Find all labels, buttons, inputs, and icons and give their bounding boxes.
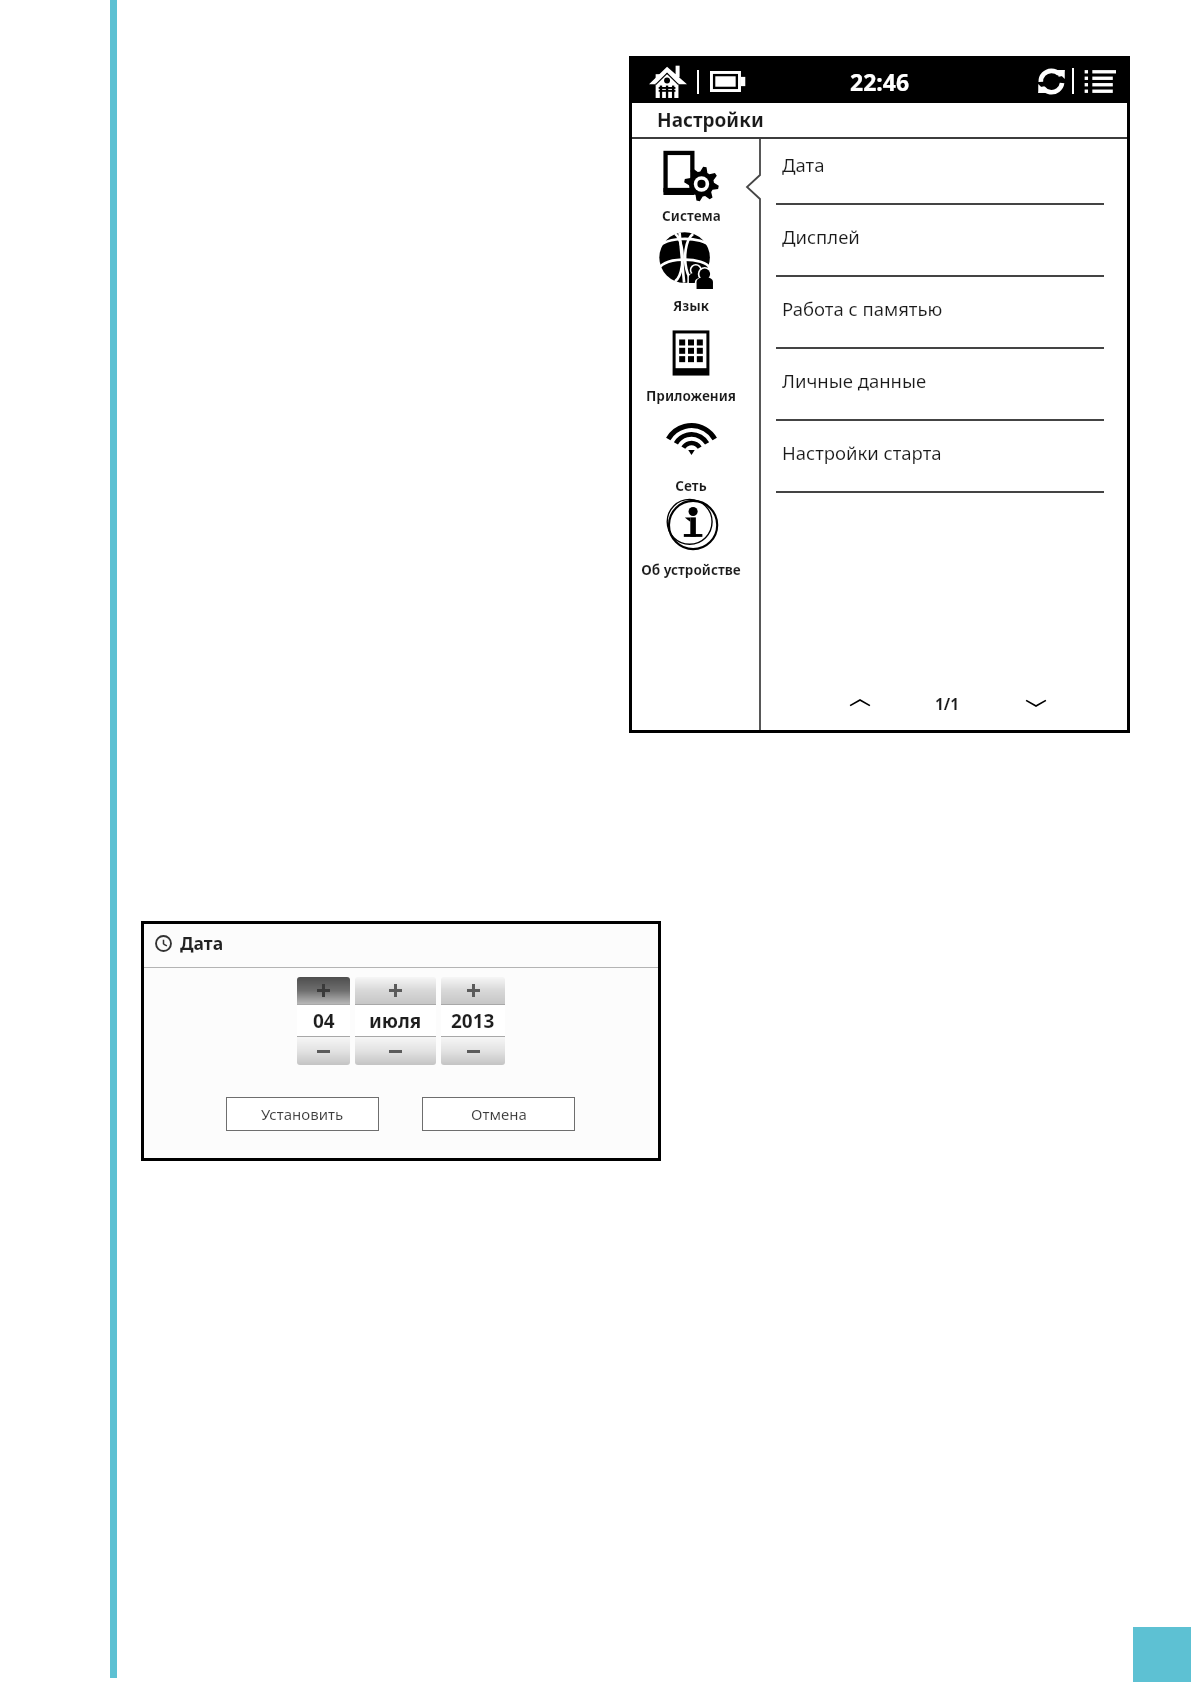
- staticText: июля: [369, 1008, 422, 1034]
- staticText: Настройки: [657, 107, 764, 133]
- button[interactable]: Decrease июля: [355, 1037, 436, 1065]
- button[interactable]: Previous page: [840, 683, 880, 723]
- button[interactable]: Next page: [1016, 683, 1056, 723]
- button[interactable]: Об устройстве: [632, 499, 760, 589]
- staticText: 2013: [451, 1008, 495, 1034]
- button[interactable]: Сеть: [632, 409, 760, 499]
- staticText: 1/1: [935, 693, 960, 714]
- button[interactable]: Дата: [760, 139, 1127, 211]
- button[interactable]: Установить: [227, 1098, 378, 1130]
- staticText: Приложения: [646, 387, 736, 405]
- button[interactable]: Работа с памятью: [760, 283, 1127, 355]
- staticText: Дата: [180, 931, 224, 955]
- button[interactable]: Menu: [1083, 64, 1117, 98]
- button[interactable]: Язык: [632, 229, 760, 319]
- button[interactable]: Приложения: [632, 319, 760, 409]
- button[interactable]: Дисплей: [760, 211, 1127, 283]
- staticText: Установить: [261, 1104, 344, 1124]
- staticText: Отмена: [471, 1104, 527, 1124]
- staticText: Сеть: [675, 477, 707, 495]
- button[interactable]: Система: [632, 139, 760, 229]
- staticText: 04: [313, 1008, 335, 1034]
- button[interactable]: Отмена: [423, 1098, 574, 1130]
- staticText: Об устройстве: [641, 561, 741, 579]
- staticText: Настройки старта: [782, 440, 942, 465]
- button[interactable]: Decrease 04: [297, 1037, 350, 1065]
- button[interactable]: Increase 04: [297, 977, 350, 1004]
- button[interactable]: Настройки старта: [760, 427, 1127, 499]
- staticText: Язык: [673, 297, 709, 315]
- button[interactable]: Decrease 2013: [441, 1037, 505, 1065]
- staticText: 22:46: [850, 66, 910, 97]
- button[interactable]: Home: [647, 61, 688, 102]
- staticText: Работа с памятью: [782, 296, 943, 321]
- button[interactable]: Refresh: [1034, 64, 1068, 98]
- button[interactable]: Increase 2013: [441, 977, 505, 1004]
- staticText: Личные данные: [782, 368, 927, 393]
- button[interactable]: Личные данные: [760, 355, 1127, 427]
- button[interactable]: Increase июля: [355, 977, 436, 1004]
- staticText: Дисплей: [782, 224, 860, 249]
- staticText: Система: [662, 207, 721, 225]
- staticText: Дата: [782, 152, 825, 177]
